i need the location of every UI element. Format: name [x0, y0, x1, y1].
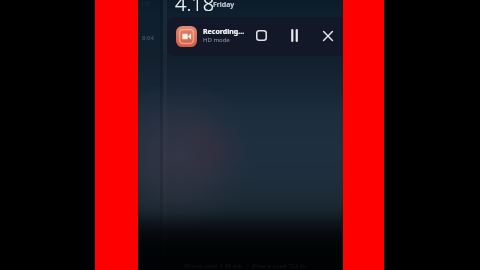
staticText: HD mode [203, 36, 230, 44]
button[interactable]: Stop recording [250, 24, 273, 47]
button[interactable]: Recording... [167, 17, 343, 56]
button[interactable]: Close notification [316, 24, 339, 47]
staticText: Phone used 3.48 mb | iPhone used 724 kb [184, 262, 307, 270]
staticText: LTE [142, 1, 151, 8]
staticText: 4.18 [175, 0, 215, 17]
button[interactable]: Pause recording [283, 24, 306, 47]
staticText: Friday [213, 0, 235, 10]
staticText: Recording... [203, 27, 245, 37]
staticText: 8:04 [142, 34, 154, 42]
